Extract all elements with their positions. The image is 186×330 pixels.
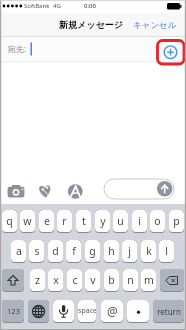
staticText: w [23,214,32,228]
staticText: i [138,214,141,228]
button[interactable]: 123 [2,300,24,323]
staticText: y [100,214,106,228]
button[interactable]: i [132,210,147,233]
staticText: r [62,214,67,228]
staticText: e [44,214,50,228]
staticText: p [173,214,180,228]
button[interactable]: r [57,210,72,233]
button[interactable] [28,300,49,323]
staticText: SoftBank [24,2,50,10]
staticText: s [34,244,40,258]
staticText: g [89,244,96,258]
button[interactable]: n [123,269,138,292]
staticText: v [90,273,96,287]
button[interactable]: d [48,240,63,263]
button[interactable]: b [104,269,119,292]
staticText: m [144,273,154,287]
button[interactable] [160,269,184,292]
button[interactable]: a [11,240,26,263]
button[interactable] [2,269,24,292]
button[interactable]: キャンセル [130,15,180,35]
button[interactable]: s [29,240,44,263]
button[interactable]: c [67,269,82,292]
staticText: 新規メッセージ [59,19,123,30]
button[interactable]: v [85,269,100,292]
button[interactable] [104,179,174,199]
staticText: c [72,273,78,287]
staticText: キャンセル [133,20,177,31]
button[interactable]: t [76,210,91,233]
button[interactable] [127,300,149,323]
staticText: z [35,273,40,287]
button[interactable]: k [141,240,156,263]
staticText: b [108,273,115,287]
staticText: 123 [7,306,20,316]
button[interactable] [0,36,186,62]
button[interactable]: x [48,269,63,292]
staticText: @ [107,303,118,319]
button[interactable]: y [95,210,110,233]
button[interactable]: f [66,240,81,263]
staticText: return [157,306,181,317]
button[interactable]: j [122,240,137,263]
button[interactable]: g [85,240,100,263]
staticText: x [53,273,59,287]
staticText: q [6,214,13,228]
button[interactable]: w [20,210,35,233]
button[interactable]: o [150,210,165,233]
staticText: l [165,244,168,258]
button[interactable]: m [141,269,156,292]
staticText: 宛先: [8,43,27,54]
button[interactable]: u [113,210,128,233]
button[interactable]: p [169,210,184,233]
staticText: j [128,244,131,258]
button[interactable]: q [2,210,17,233]
button[interactable]: z [30,269,45,292]
staticText: n [127,273,134,287]
button[interactable]: l [159,240,174,263]
button[interactable]: space [78,300,96,323]
button[interactable]: e [39,210,54,233]
staticText: 4G [53,2,61,10]
staticText: 0:00 [84,2,96,10]
staticText: h [108,244,115,258]
staticText: o [154,214,161,228]
staticText: f [72,244,76,258]
staticText: d [52,244,59,258]
staticText: k [146,244,152,258]
button[interactable] [53,300,74,323]
staticText: space [78,306,96,316]
button[interactable] [68,184,83,199]
staticText: t [82,214,86,228]
staticText: a [16,244,22,258]
button[interactable]: return [153,300,184,323]
staticText: u [117,214,124,228]
button[interactable]: h [104,240,119,263]
button[interactable]: @ [101,300,123,323]
button[interactable] [162,44,179,61]
